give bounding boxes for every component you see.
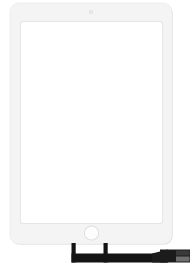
button[interactable]: iPad mini touch screen digitizer glass p… [0, 0, 196, 268]
